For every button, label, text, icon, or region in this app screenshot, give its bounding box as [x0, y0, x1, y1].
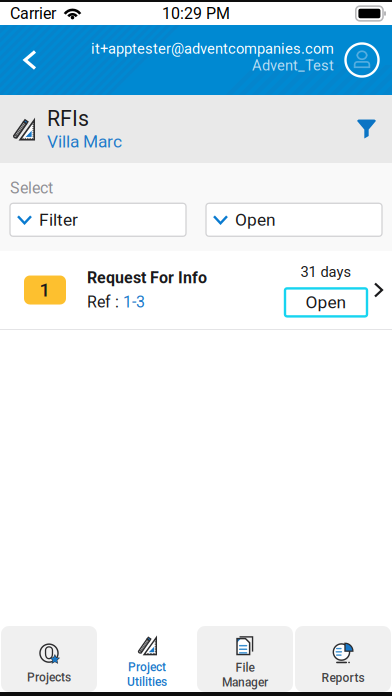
- button[interactable]: Back: [0, 25, 57, 95]
- button[interactable]: Filter: [341, 95, 392, 163]
- button[interactable]: Open: [206, 203, 382, 236]
- staticText: it+apptester@adventcompanies.com: [91, 40, 334, 57]
- staticText: Request For Info: [87, 269, 207, 287]
- staticText: Reports: [321, 671, 364, 685]
- staticText: Projects: [27, 671, 71, 684]
- staticText: Open: [305, 292, 346, 312]
- staticText: Villa Marc: [47, 132, 122, 152]
- staticText: 1-3: [123, 293, 145, 311]
- button[interactable]: Projects: [1, 626, 97, 692]
- staticText: Carrier: [10, 4, 56, 23]
- button[interactable]: Filter: [10, 203, 186, 236]
- button[interactable]: 1: [0, 251, 392, 329]
- staticText: 1: [39, 279, 50, 301]
- button[interactable]: Reports: [295, 626, 391, 692]
- staticText: Open: [235, 210, 276, 230]
- staticText: 31 days: [300, 264, 351, 280]
- button[interactable]: File: [197, 626, 293, 692]
- staticText: Select: [10, 179, 53, 197]
- staticText: Utilities: [127, 675, 167, 689]
- staticText: 10:29 PM: [162, 4, 230, 23]
- button[interactable]: Project: [99, 626, 195, 692]
- staticText: Manager: [222, 675, 268, 689]
- staticText: Advent_Test: [252, 57, 334, 74]
- button[interactable]: Account: [332, 25, 392, 95]
- staticText: Filter: [39, 210, 78, 230]
- staticText: Ref :: [87, 293, 123, 311]
- staticText: File: [235, 661, 254, 674]
- staticText: Project: [128, 660, 166, 674]
- staticText: RFIs: [47, 106, 89, 131]
